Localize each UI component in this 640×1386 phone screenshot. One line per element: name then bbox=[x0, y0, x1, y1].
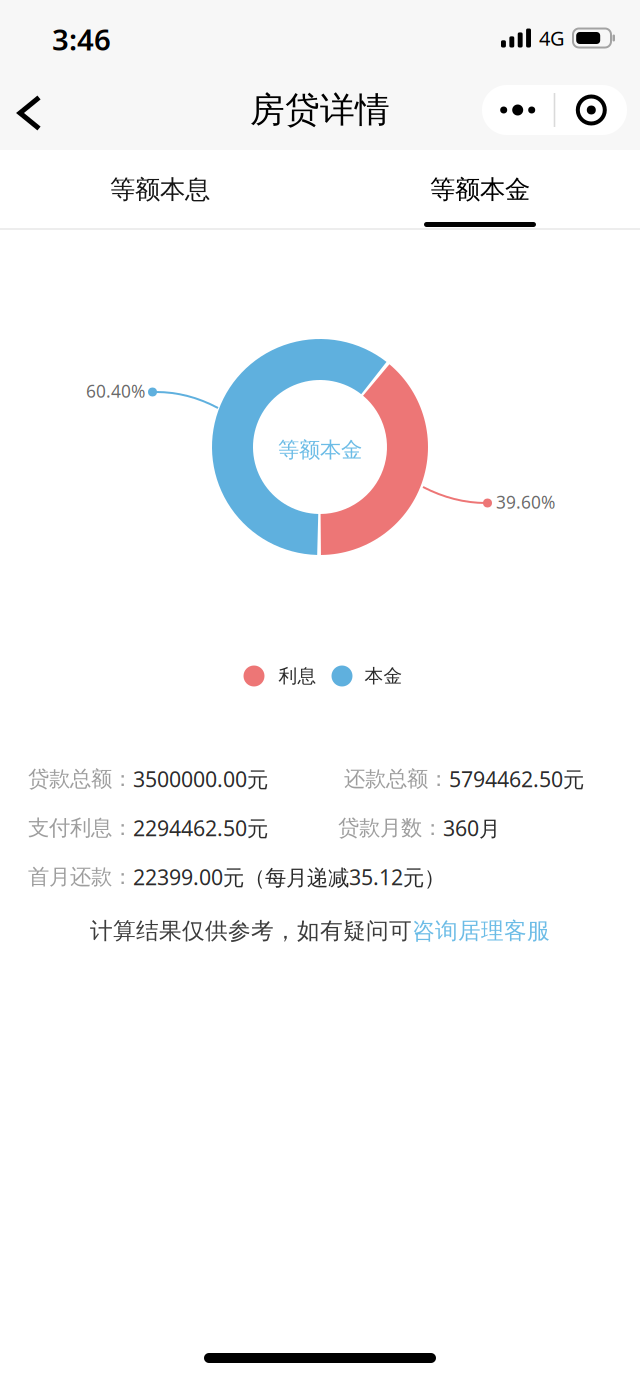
staticText: 等额本金 bbox=[430, 174, 530, 205]
staticText: 60.40% bbox=[86, 379, 145, 402]
button[interactable]: Close bbox=[555, 85, 627, 135]
staticText: 3:46 bbox=[52, 19, 111, 58]
staticText: 22399.00元（每月递减35.12元） bbox=[133, 863, 445, 891]
staticText: 贷款月数： bbox=[338, 815, 443, 841]
staticText: 贷款总额： bbox=[28, 766, 133, 792]
button[interactable]: 等额本金 bbox=[320, 150, 640, 228]
button[interactable]: 咨询居理客服 bbox=[412, 917, 550, 945]
staticText: 等额本息 bbox=[110, 174, 210, 205]
staticText: 39.60% bbox=[496, 490, 555, 513]
staticText: 支付利息： bbox=[28, 815, 133, 841]
staticText: 2294462.50元 bbox=[133, 814, 268, 842]
staticText: 等额本金 bbox=[278, 437, 362, 463]
staticText: 房贷详情 bbox=[250, 89, 390, 131]
staticText: 本金 bbox=[364, 664, 402, 687]
staticText: 利息 bbox=[278, 664, 316, 687]
staticText: 3500000.00元 bbox=[133, 765, 268, 793]
staticText: 4G bbox=[539, 25, 565, 51]
staticText: 计算结果仅供参考，如有疑问可 bbox=[90, 917, 412, 945]
staticText: 5794462.50元 bbox=[449, 765, 584, 793]
staticText: 首月还款： bbox=[28, 864, 133, 890]
staticText: 咨询居理客服 bbox=[412, 917, 550, 945]
staticText: 还款总额： bbox=[344, 766, 449, 792]
button[interactable]: More bbox=[482, 85, 554, 135]
button[interactable]: Back bbox=[0, 77, 65, 148]
button[interactable]: 等额本息 bbox=[0, 150, 320, 228]
staticText: 360月 bbox=[443, 814, 500, 842]
